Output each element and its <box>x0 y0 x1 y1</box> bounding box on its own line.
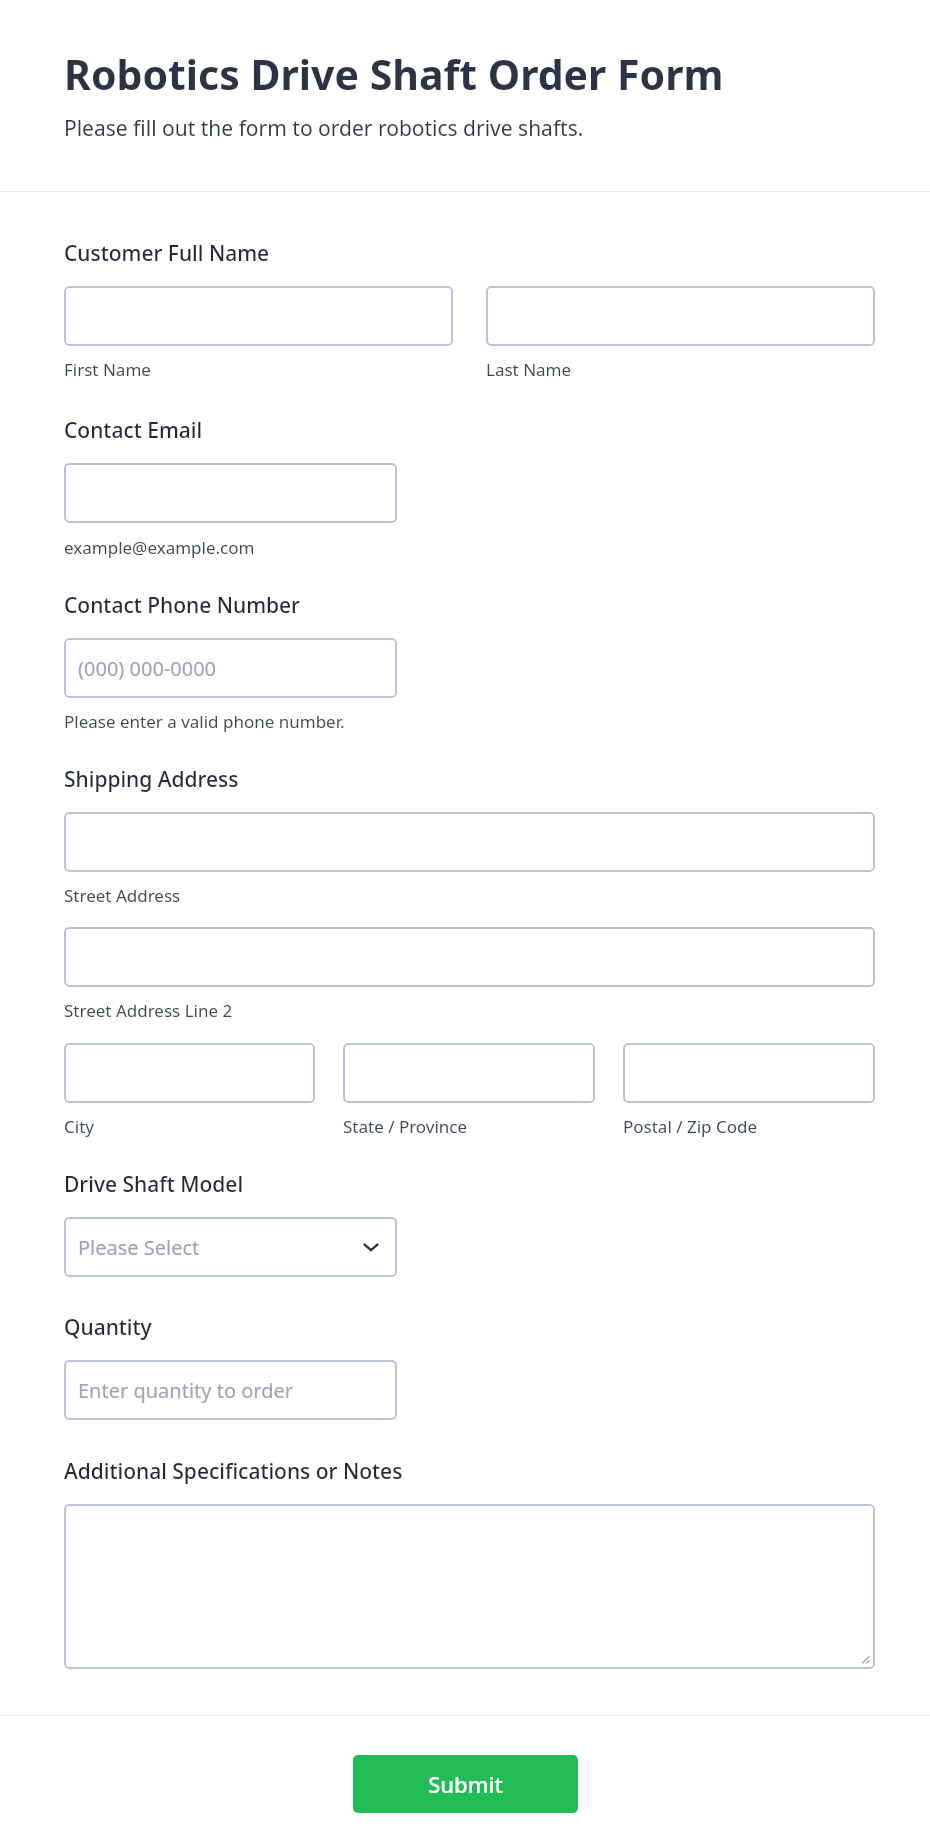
button[interactable]: Quantity <box>64 1360 397 1420</box>
staticText: City <box>64 1115 94 1138</box>
staticText: Please Select <box>78 1234 200 1261</box>
staticText: Contact Email <box>64 416 203 445</box>
button[interactable]: Additional Specifications or Notes <box>64 1504 875 1669</box>
button[interactable]: Submit <box>353 1755 578 1813</box>
staticText: State / Province <box>343 1115 468 1138</box>
button[interactable]: Contact Phone Number <box>64 638 397 698</box>
button[interactable]: Drive Shaft Model <box>64 1217 397 1277</box>
staticText: Street Address Line 2 <box>64 999 233 1022</box>
button[interactable]: City <box>64 1043 315 1103</box>
button[interactable]: Street Address Line 2 <box>64 927 875 987</box>
staticText: example@example.com <box>64 536 255 559</box>
staticText: Street Address <box>64 884 181 907</box>
staticText: Additional Specifications or Notes <box>64 1457 403 1486</box>
staticText: (000) 000-0000 <box>78 655 217 682</box>
staticText: Drive Shaft Model <box>64 1170 244 1199</box>
button[interactable]: State / Province <box>343 1043 595 1103</box>
staticText: Shipping Address <box>64 765 239 794</box>
button[interactable]: Street Address <box>64 812 875 872</box>
staticText: Quantity <box>64 1313 152 1342</box>
staticText: Postal / Zip Code <box>623 1115 757 1138</box>
staticText: Submit <box>428 1769 503 1799</box>
button[interactable]: Postal / Zip Code <box>623 1043 875 1103</box>
staticText: Please fill out the form to order roboti… <box>64 114 584 143</box>
button[interactable]: Contact Email <box>64 463 397 523</box>
staticText: Enter quantity to order <box>78 1377 293 1404</box>
staticText: Contact Phone Number <box>64 591 300 620</box>
staticText: Customer Full Name <box>64 239 270 268</box>
staticText: Last Name <box>486 358 572 381</box>
staticText: Robotics Drive Shaft Order Form <box>64 46 724 102</box>
button[interactable]: Last Name <box>486 286 875 346</box>
button[interactable]: First Name <box>64 286 453 346</box>
staticText: Please enter a valid phone number. <box>64 710 345 733</box>
staticText: First Name <box>64 358 151 381</box>
